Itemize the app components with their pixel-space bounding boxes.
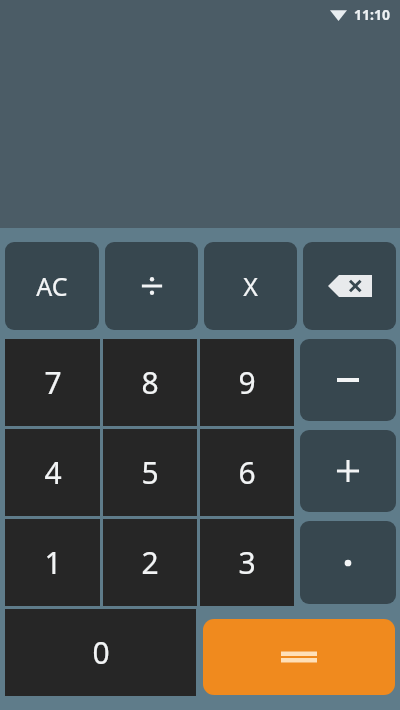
staticText: 6 [238, 452, 256, 493]
button[interactable]: 3 [200, 519, 294, 606]
button[interactable]: 7 [5, 339, 100, 426]
button[interactable]: 6 [200, 429, 294, 516]
staticText: 0 [92, 632, 110, 673]
staticText: 4 [44, 452, 62, 493]
button[interactable]: Decimal point [300, 521, 396, 604]
staticText: 11:10 [354, 5, 390, 24]
staticText: 7 [44, 362, 62, 403]
staticText: 1 [44, 542, 62, 583]
staticText: 5 [141, 452, 159, 493]
button[interactable]: 4 [5, 429, 100, 516]
button[interactable]: 9 [200, 339, 294, 426]
button[interactable]: Backspace [303, 242, 396, 330]
staticText: X [243, 269, 258, 303]
staticText: AC [36, 269, 68, 303]
button[interactable]: Divide [105, 242, 198, 330]
button[interactable]: Equals [203, 619, 395, 695]
button[interactable]: AC [5, 242, 99, 330]
button[interactable]: 2 [103, 519, 197, 606]
button[interactable]: 0 [5, 609, 196, 696]
button[interactable]: 5 [103, 429, 197, 516]
button[interactable]: 8 [103, 339, 197, 426]
button[interactable]: Plus [300, 430, 396, 512]
staticText: 9 [238, 362, 256, 403]
button[interactable]: 1 [5, 519, 100, 606]
staticText: 3 [238, 542, 256, 583]
button[interactable]: Minus [300, 339, 396, 421]
staticText: 8 [141, 362, 159, 403]
staticText: 2 [141, 542, 159, 583]
button[interactable]: X [204, 242, 297, 330]
